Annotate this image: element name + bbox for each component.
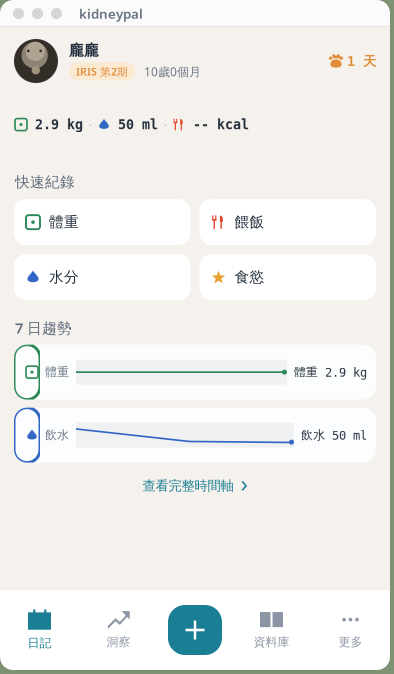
staticText: 飲水 50 ml [301,428,367,442]
button[interactable]: 體重 [14,199,190,245]
staticText: -- kcal [185,117,249,132]
staticText: 查看完整時間軸 [142,478,233,494]
staticText: 洞察 [106,635,130,649]
staticText: 餵飯 [234,213,264,231]
button[interactable]: 新增 [168,605,222,655]
staticText: 10歲0個月 [144,63,201,79]
staticText: 2.9 kg [27,117,83,132]
button[interactable]: 日記 [0,601,79,658]
button[interactable]: 食慾 [199,254,376,300]
staticText: 快速紀錄 [15,173,75,191]
staticText: IRIS 第2期 [76,64,128,79]
staticText: 飲水 [45,428,69,442]
staticText: 更多 [338,635,362,649]
staticText: 體重 [45,365,69,379]
staticText: · [158,117,173,132]
staticText: kidneypal [79,5,143,22]
staticText: · [83,117,98,132]
staticText: 體重 [49,213,79,231]
staticText: 水分 [49,268,79,286]
staticText: 龐龐 [69,41,99,59]
staticText: 資料庫 [253,635,289,649]
staticText: 7 日趨勢 [15,318,72,338]
button[interactable]: 洞察 [79,603,158,657]
button[interactable]: 更多 [311,603,390,657]
button[interactable]: 餵飯 [199,199,376,245]
staticText: 日記 [27,636,51,650]
staticText: 50 ml [110,117,158,132]
button[interactable]: 查看完整時間軸 [0,469,390,503]
staticText: 體重 2.9 kg [294,365,367,379]
staticText: 1 天 [347,53,376,69]
staticText: 食慾 [234,268,264,286]
button[interactable]: 資料庫 [232,603,311,657]
button[interactable]: 水分 [14,254,190,300]
